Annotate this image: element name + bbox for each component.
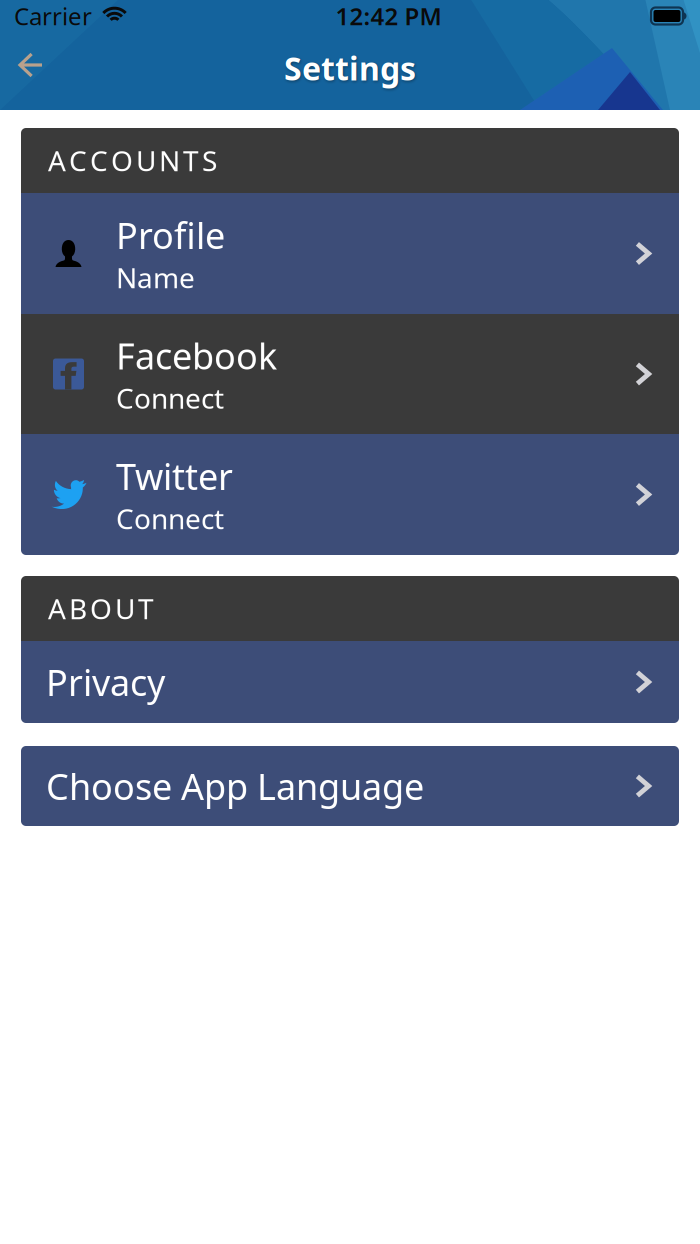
staticText: Facebook: [116, 331, 277, 379]
button[interactable]: Privacy: [21, 641, 679, 723]
button[interactable]: Profile: [21, 193, 679, 314]
staticText: Settings: [284, 47, 416, 89]
staticText: Connect: [116, 379, 224, 416]
staticText: A C C O U N T S: [48, 142, 217, 179]
staticText: Twitter: [116, 452, 233, 500]
staticText: A B O U T: [48, 590, 154, 627]
button[interactable]: Facebook: [21, 314, 679, 434]
staticText: Connect: [116, 500, 224, 537]
button[interactable]: Choose App Language: [21, 746, 679, 826]
staticText: Privacy: [46, 658, 165, 706]
button[interactable]: Twitter: [21, 434, 679, 555]
staticText: Choose App Language: [46, 762, 424, 810]
staticText: Carrier: [14, 0, 92, 32]
staticText: Name: [116, 259, 195, 296]
staticText: Profile: [116, 211, 225, 259]
staticText: 12:42 PM: [335, 0, 441, 32]
button[interactable]: Back: [0, 44, 63, 92]
